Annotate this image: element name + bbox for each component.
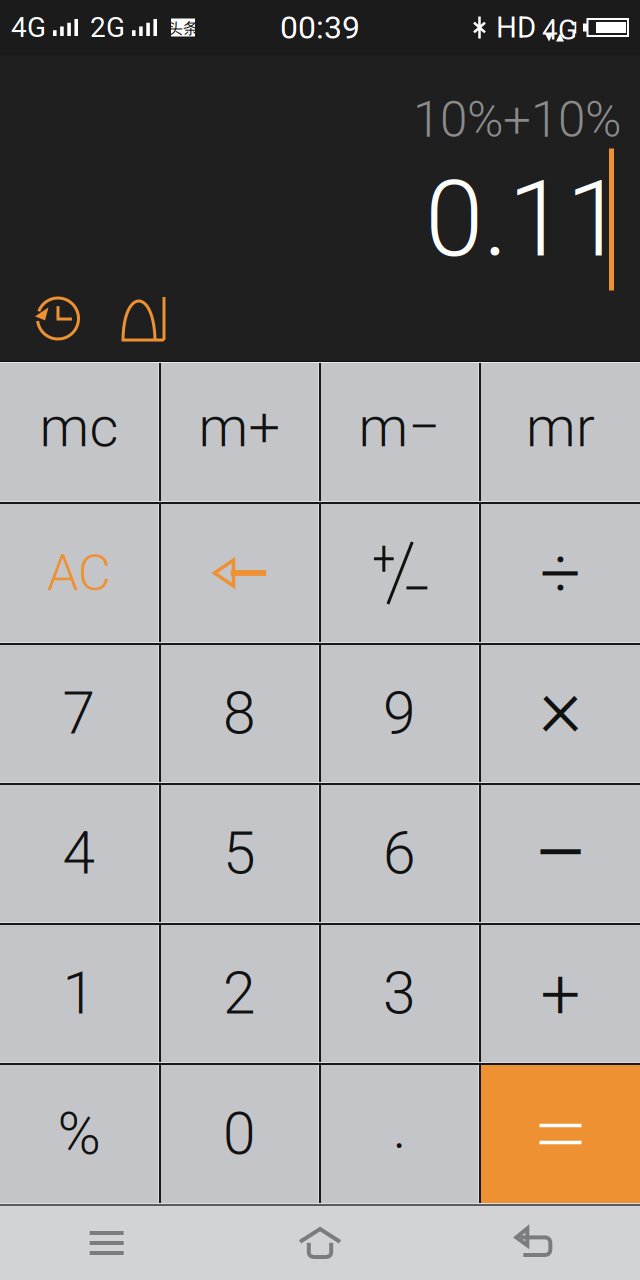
button[interactable]: m+ [161, 363, 318, 501]
button[interactable]: 9 [321, 645, 478, 782]
button[interactable]: Home [213, 1206, 427, 1280]
staticText: 10%+10% [413, 91, 621, 149]
staticText: 3 [383, 959, 416, 1028]
button[interactable]: − [481, 785, 640, 922]
button[interactable]: 1 [0, 925, 158, 1062]
staticText: 2G [90, 11, 125, 44]
button[interactable]: Plus minus [321, 504, 478, 642]
staticText: 2 [223, 959, 256, 1028]
button[interactable]: History [27, 290, 89, 346]
staticText: mr [526, 394, 595, 460]
staticText: 8 [223, 679, 256, 748]
staticText: 5 [223, 819, 256, 888]
staticText: mc [39, 394, 118, 460]
staticText: + [540, 953, 580, 1036]
staticText: % [57, 1100, 100, 1168]
button[interactable]: + [481, 925, 640, 1062]
staticText: m− [358, 394, 440, 460]
button[interactable]: mr [481, 363, 640, 501]
staticText: 7 [62, 679, 95, 748]
staticText: 1 [570, 17, 580, 38]
staticText: AC [47, 543, 111, 603]
staticText: 4 [62, 819, 95, 888]
button[interactable]: m− [321, 363, 478, 501]
staticText: 9 [383, 679, 416, 748]
staticText: . [392, 1094, 406, 1162]
staticText: 1 [62, 959, 95, 1028]
button[interactable]: ÷ [481, 504, 640, 642]
staticText: 6 [383, 819, 416, 888]
staticText: 00:39 [280, 9, 360, 46]
button[interactable]: Back [427, 1206, 640, 1280]
button[interactable]: AC [0, 504, 158, 642]
staticText: 头条 [167, 16, 199, 39]
staticText: HD [496, 10, 536, 45]
button[interactable]: 6 [321, 785, 478, 922]
button[interactable]: 7 [0, 645, 158, 782]
staticText: 4G [11, 11, 46, 44]
button[interactable]: × [481, 645, 640, 782]
button[interactable]: 5 [161, 785, 318, 922]
button[interactable]: Backspace [161, 504, 318, 642]
button[interactable]: Graph [112, 290, 174, 346]
staticText: 0.11 [425, 158, 624, 281]
button[interactable]: Recents [0, 1206, 213, 1280]
button[interactable]: Equals [481, 1065, 640, 1203]
staticText: 0 [223, 1100, 256, 1168]
button[interactable]: . [321, 1065, 478, 1203]
button[interactable]: 3 [321, 925, 478, 1062]
button[interactable]: 8 [161, 645, 318, 782]
button[interactable]: 4 [0, 785, 158, 922]
button[interactable]: 2 [161, 925, 318, 1062]
staticText: ÷ [540, 531, 581, 615]
staticText: m+ [198, 394, 280, 460]
button[interactable]: mc [0, 363, 158, 501]
staticText: 4G [542, 13, 577, 46]
button[interactable]: 0 [161, 1065, 318, 1203]
button[interactable]: % [0, 1065, 158, 1203]
staticText: × [539, 659, 582, 756]
staticText: − [532, 796, 588, 911]
